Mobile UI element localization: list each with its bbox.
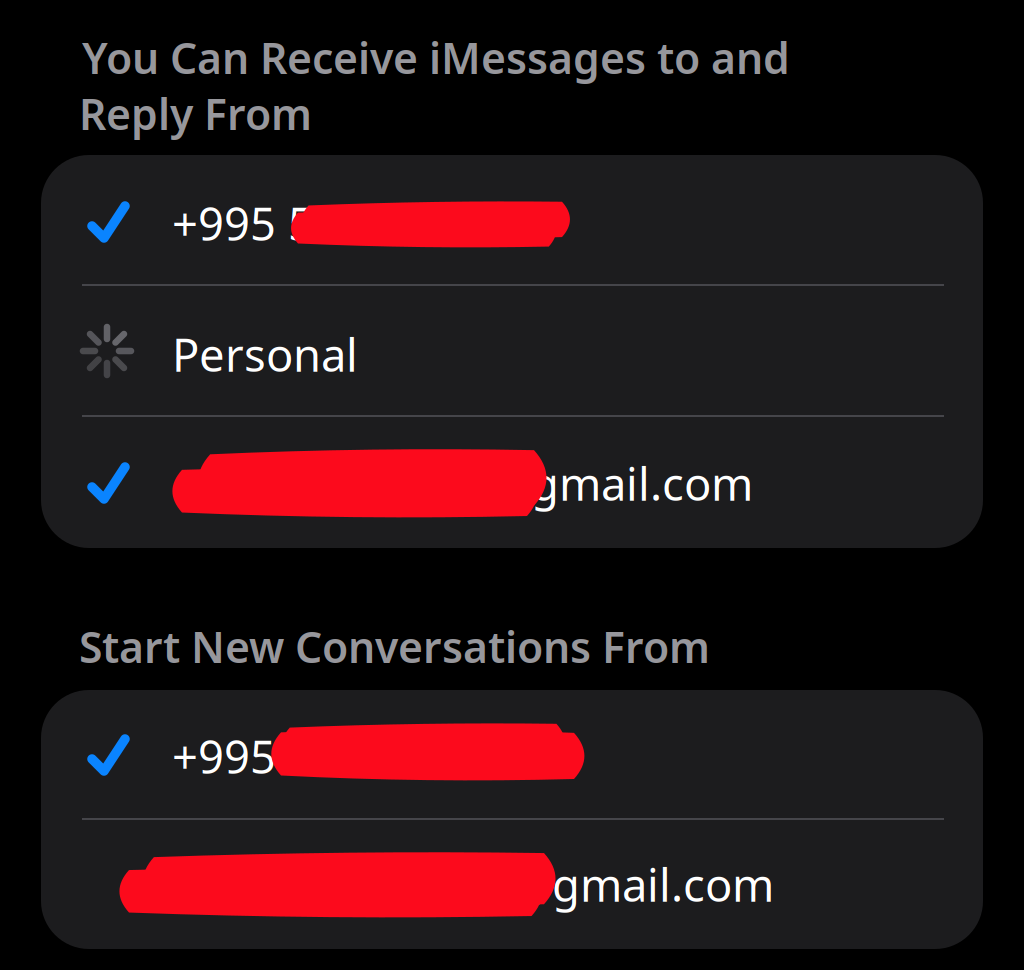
button[interactable]: @gmail.com: [41, 417, 983, 548]
button[interactable]: Personal: [41, 286, 983, 417]
staticText: @gmail.com: [490, 453, 753, 513]
staticText: Reply From: [79, 85, 312, 142]
staticText: @gmail.com: [511, 854, 774, 914]
staticText: +995 5: [172, 193, 314, 253]
staticText: +995: [172, 726, 276, 786]
staticText: Start New Conversations From: [79, 618, 710, 675]
button[interactable]: +995: [41, 690, 983, 818]
button[interactable]: @gmail.com: [41, 820, 983, 949]
staticText: You Can Receive iMessages to and: [82, 29, 790, 86]
button[interactable]: +995 5: [41, 155, 983, 285]
staticText: Personal: [172, 324, 358, 384]
